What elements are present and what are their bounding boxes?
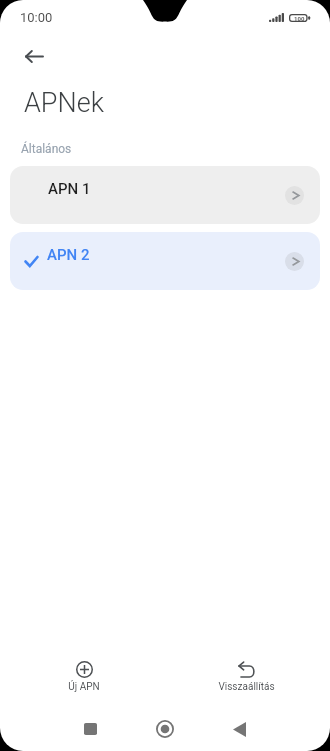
button[interactable]: Új APN <box>6 657 162 693</box>
button[interactable]: Open APN 2 details <box>285 252 304 271</box>
button[interactable]: APN 2 <box>10 232 320 290</box>
button[interactable]: APN 1 <box>10 166 320 224</box>
button[interactable]: Visszaállítás <box>168 657 324 693</box>
staticText: Visszaállítás <box>218 681 275 693</box>
staticText: 100 <box>294 15 305 22</box>
staticText: 10:00 <box>20 10 53 25</box>
button[interactable]: Recent apps <box>68 707 112 751</box>
button[interactable]: Open APN 1 details <box>285 186 304 205</box>
staticText: APN 2 <box>47 246 90 264</box>
button[interactable]: Back <box>15 37 53 75</box>
staticText: Általános <box>21 142 72 156</box>
staticText: APN 1 <box>48 180 91 198</box>
button[interactable]: Home <box>143 707 187 751</box>
staticText: APNek <box>24 87 104 119</box>
button[interactable]: Back <box>217 707 261 751</box>
staticText: Új APN <box>68 681 100 693</box>
